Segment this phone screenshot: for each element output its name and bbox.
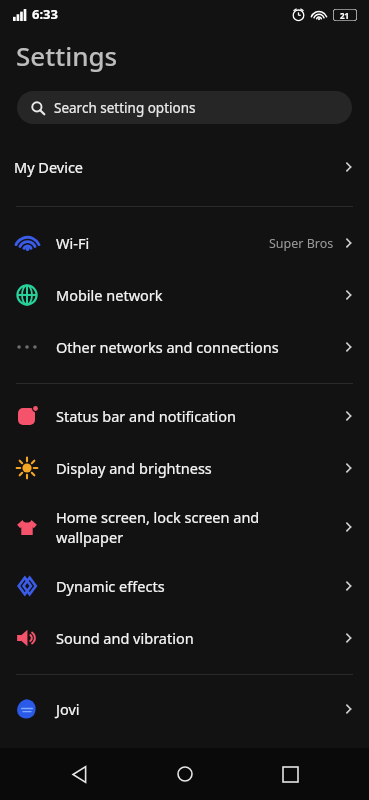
staticText: My Device bbox=[14, 157, 341, 177]
staticText: Wi-Fi bbox=[56, 233, 248, 253]
staticText: 6:33 bbox=[32, 5, 58, 23]
button[interactable]: Search setting options bbox=[17, 91, 352, 124]
other: Sound and vibration bbox=[16, 627, 38, 649]
button[interactable]: Recent apps bbox=[263, 748, 317, 800]
staticText: Other networks and connections bbox=[56, 337, 313, 357]
button[interactable]: Jovi bbox=[0, 683, 369, 735]
staticText: Search setting options bbox=[54, 99, 196, 117]
other: Display and brightness bbox=[16, 457, 38, 479]
button[interactable]: Display and brightness bbox=[0, 442, 369, 494]
button[interactable]: Wi-Fi bbox=[0, 217, 369, 269]
other: Other networks bbox=[16, 336, 38, 358]
staticText: Jovi bbox=[56, 699, 313, 719]
other: Wi-Fi bbox=[16, 232, 39, 255]
staticText: Status bar and notification bbox=[56, 406, 313, 426]
other: Status bar and notification bbox=[17, 406, 38, 427]
staticText: Super Bros bbox=[269, 235, 334, 252]
button[interactable]: Status bar and notification bbox=[0, 390, 369, 442]
other: Mobile network bbox=[16, 284, 38, 306]
button[interactable]: My Device bbox=[0, 144, 369, 190]
staticText: Settings bbox=[16, 38, 118, 73]
button[interactable]: Home bbox=[158, 748, 212, 800]
staticText: 21 bbox=[340, 10, 350, 21]
staticText: Home screen, lock screen and wallpaper bbox=[56, 507, 313, 547]
other: Jovi bbox=[16, 698, 38, 720]
staticText: Dynamic effects bbox=[56, 576, 313, 596]
other: Dynamic effects bbox=[16, 575, 38, 597]
button[interactable]: Other networks bbox=[0, 321, 369, 373]
button[interactable]: Home screen and wallpaper bbox=[0, 494, 369, 560]
button[interactable]: Sound and vibration bbox=[0, 612, 369, 664]
button[interactable]: Mobile network bbox=[0, 269, 369, 321]
button[interactable]: Dynamic effects bbox=[0, 560, 369, 612]
staticText: Mobile network bbox=[56, 285, 313, 305]
staticText: Display and brightness bbox=[56, 458, 313, 478]
button[interactable]: Back bbox=[52, 748, 106, 800]
other: Home screen and wallpaper bbox=[16, 516, 38, 538]
staticText: Sound and vibration bbox=[56, 628, 313, 648]
